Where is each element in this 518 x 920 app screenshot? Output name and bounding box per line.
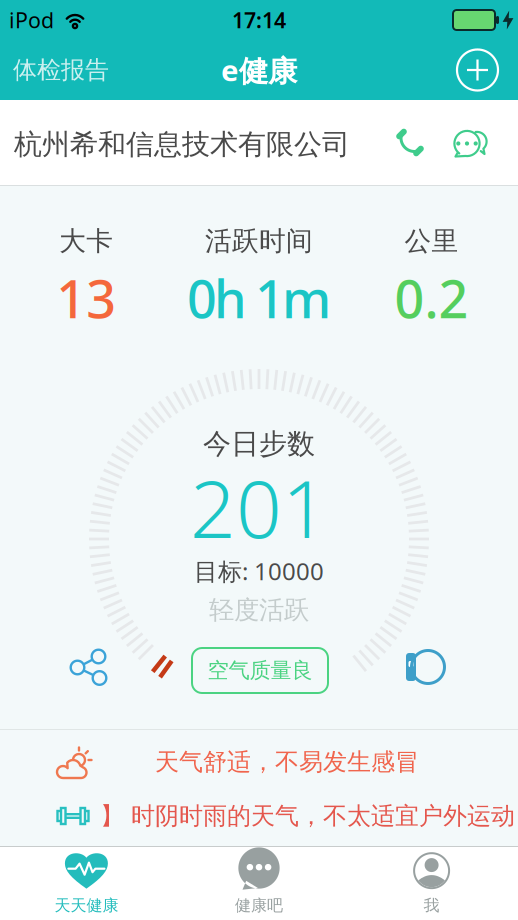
staticText: 目标: 10000 [194,555,324,587]
button[interactable]: 天天健康 [0,852,173,915]
staticText: 杭州希和信息技术有限公司 [14,127,350,162]
staticText: 17:14 [232,6,286,34]
staticText: 活跃时间 [205,225,313,257]
staticText: 13 [56,263,116,333]
staticText: 体检报告 [13,55,109,85]
staticText: 健康吧 [235,896,283,915]
button[interactable]: 健康吧 [173,852,345,915]
staticText: e健康 [221,50,297,89]
staticText: 0.2 [394,263,468,333]
button[interactable]: 空气质量良 [192,648,328,693]
button[interactable]: Call [392,124,428,160]
staticText: iPod [9,6,54,34]
button[interactable]: 我 [345,852,518,915]
staticText: 201 [190,454,328,560]
staticText: 今日步数 [203,427,315,461]
staticText: 】 时阴时雨的天气，不太适宜户外运动，请注意保暖 [100,801,518,831]
staticText: 0h 1m [187,263,331,333]
button[interactable]: Watch [402,645,446,689]
staticText: 天气舒适，不易发生感冒 [155,747,419,777]
staticText: 我 [424,896,440,915]
button[interactable]: 体检报告 [0,55,109,85]
staticText: 公里 [404,225,458,257]
button[interactable]: Share [66,645,110,689]
staticText: 天天健康 [54,896,118,915]
button[interactable]: Add [457,49,518,90]
staticText: 大卡 [59,225,113,257]
staticText: 轻度活跃 [209,594,309,625]
staticText: 空气质量良 [207,657,312,684]
button[interactable]: Message [428,122,518,162]
